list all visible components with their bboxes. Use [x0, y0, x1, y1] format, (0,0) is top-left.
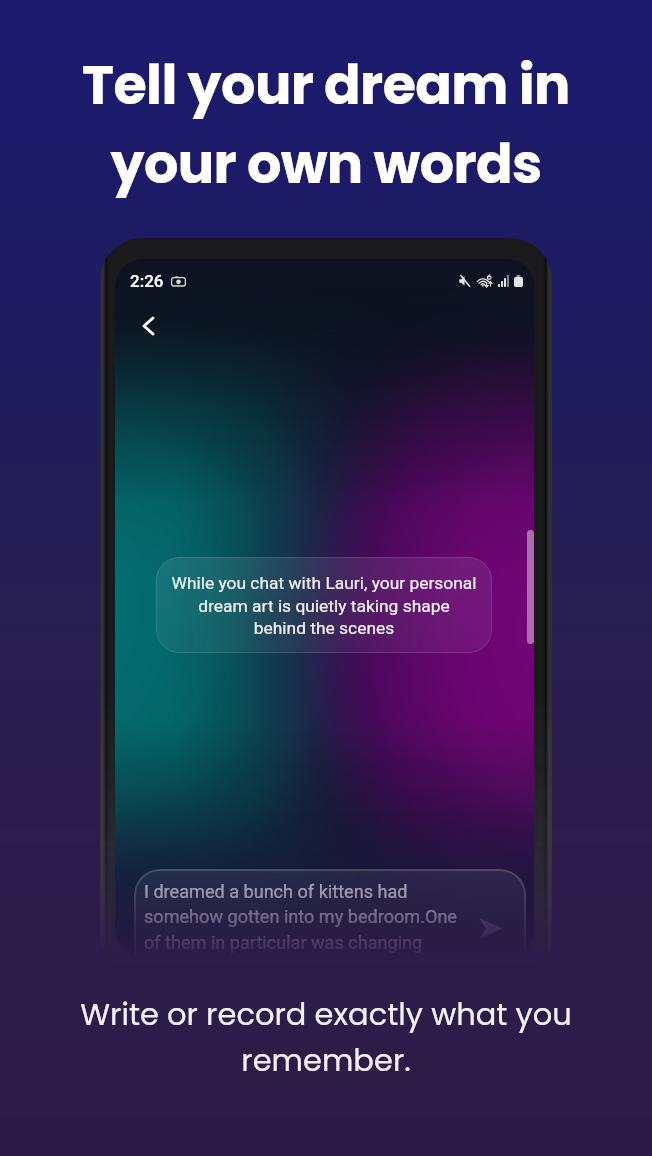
staticText: I dreamed a bunch of kittens had somehow…: [144, 881, 459, 957]
staticText: Tell your dream in your own words: [82, 47, 570, 202]
button[interactable]: Back: [126, 304, 170, 348]
staticText: While you chat with Lauri, your personal…: [171, 573, 477, 638]
staticText: 2:26: [130, 271, 164, 291]
button[interactable]: Send: [466, 904, 514, 952]
button[interactable]: While you chat with Lauri, your personal…: [156, 557, 492, 653]
staticText: Write or record exactly what you remembe…: [80, 993, 572, 1082]
button[interactable]: I dreamed a bunch of kittens had somehow…: [134, 869, 526, 957]
